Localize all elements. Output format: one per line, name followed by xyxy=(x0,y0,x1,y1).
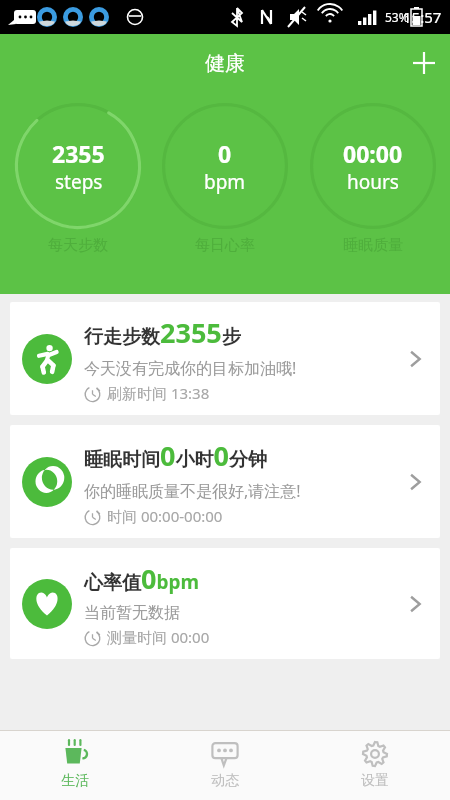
button[interactable]: 动态 xyxy=(150,731,300,800)
staticText: 刷新时间 13:38 xyxy=(107,383,210,403)
button[interactable]: Add xyxy=(398,37,450,89)
button[interactable]: 睡眠时间0小时0分钟 xyxy=(10,425,440,538)
staticText: 15:57 xyxy=(403,7,442,27)
staticText: 时间 00:00-00:00 xyxy=(107,506,223,526)
staticText: 行走步数2355步 xyxy=(84,314,241,351)
staticText: 每天步数 xyxy=(48,236,108,255)
button[interactable]: 00:00 xyxy=(303,102,443,255)
staticText: 心率值0bpm xyxy=(84,560,199,597)
staticText: 睡眠质量 xyxy=(343,236,403,255)
staticText: 今天没有完成你的目标加油哦! xyxy=(84,357,297,379)
staticText: steps xyxy=(55,169,103,195)
button[interactable]: 行走步数2355步 xyxy=(10,302,440,415)
staticText: 健康 xyxy=(205,51,245,76)
staticText: hours xyxy=(347,169,399,195)
staticText: bpm xyxy=(204,169,246,195)
button[interactable]: 0 xyxy=(155,102,295,255)
staticText: 生活 xyxy=(61,772,89,790)
staticText: 当前暂无数据 xyxy=(84,603,180,623)
staticText: 设置 xyxy=(361,772,389,790)
staticText: 00:00 xyxy=(343,138,403,169)
staticText: 2355 xyxy=(52,138,105,169)
button[interactable]: 生活 xyxy=(0,731,150,800)
staticText: 动态 xyxy=(211,772,239,790)
button[interactable]: 2355 xyxy=(8,102,148,255)
staticText: 你的睡眠质量不是很好,请注意! xyxy=(84,480,301,502)
staticText: 睡眠时间0小时0分钟 xyxy=(84,437,267,474)
staticText: 53% xyxy=(385,9,409,25)
staticText: 每日心率 xyxy=(195,236,255,255)
staticText: 0 xyxy=(218,138,232,169)
button[interactable]: 心率值0bpm xyxy=(10,548,440,659)
button[interactable]: 设置 xyxy=(300,731,450,800)
staticText: 测量时间 00:00 xyxy=(107,627,210,647)
